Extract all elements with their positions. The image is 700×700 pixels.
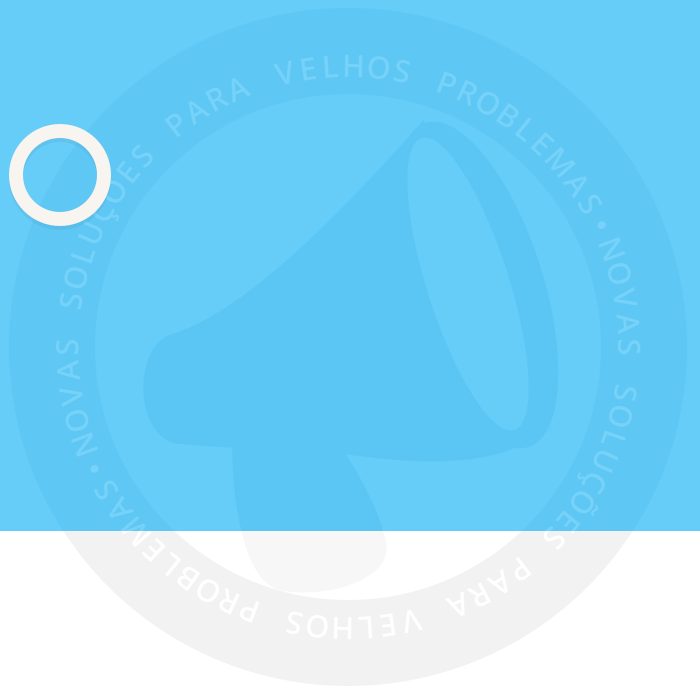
staticText: A xyxy=(568,163,588,204)
staticText: U xyxy=(79,212,102,253)
staticText: V xyxy=(275,52,294,93)
staticText: R xyxy=(219,582,238,623)
staticText: P xyxy=(438,63,457,103)
staticText: B xyxy=(177,558,197,599)
staticText xyxy=(625,350,633,391)
staticText: E xyxy=(534,123,551,163)
staticText: Õ xyxy=(101,171,125,211)
staticText: O xyxy=(64,400,88,441)
staticText: A xyxy=(619,303,639,343)
staticText: L xyxy=(73,234,89,275)
staticText: S xyxy=(394,50,411,91)
staticText: O xyxy=(64,400,88,441)
staticText: R xyxy=(206,78,225,118)
staticText: S xyxy=(394,50,411,91)
staticText: L xyxy=(358,608,374,649)
staticText: H xyxy=(331,609,354,649)
staticText: A xyxy=(57,350,77,391)
staticText: A xyxy=(227,67,247,108)
staticText: E xyxy=(299,47,316,88)
staticText: A xyxy=(491,564,511,604)
staticText: R xyxy=(458,71,477,112)
staticText: A xyxy=(108,490,128,531)
staticText: A xyxy=(619,303,639,343)
staticText: O xyxy=(476,82,500,123)
staticText: A xyxy=(108,490,128,531)
staticText: S xyxy=(133,135,150,175)
staticText: P xyxy=(511,550,530,591)
staticText: O xyxy=(609,396,633,437)
staticText: O xyxy=(367,46,391,87)
staticText: A xyxy=(185,90,205,130)
staticText: Õ xyxy=(101,171,125,211)
staticText: O xyxy=(305,607,329,648)
staticText: S xyxy=(285,603,302,644)
staticText: L xyxy=(162,545,178,586)
staticText: V xyxy=(402,601,421,642)
staticText: Ç xyxy=(586,462,605,503)
staticText: S xyxy=(546,518,563,559)
staticText: Ç xyxy=(91,191,110,232)
staticText: B xyxy=(498,95,518,135)
staticText: Õ xyxy=(571,483,595,523)
staticText: • xyxy=(596,205,608,245)
staticText: S xyxy=(546,518,563,559)
staticText: P xyxy=(239,591,258,631)
staticText: A xyxy=(185,90,205,130)
staticText: H xyxy=(342,45,365,85)
staticText: E xyxy=(118,151,135,192)
staticText: P xyxy=(166,103,185,144)
staticText: R xyxy=(471,576,490,616)
staticText: A xyxy=(491,564,511,604)
staticText: Õ xyxy=(571,483,595,523)
staticText: E xyxy=(380,606,397,646)
staticText: V xyxy=(402,601,421,642)
staticText: O xyxy=(305,607,329,648)
staticText: L xyxy=(322,45,338,86)
staticText: S xyxy=(621,326,638,367)
staticText: O xyxy=(608,253,632,294)
staticText: U xyxy=(79,212,102,253)
staticText: O xyxy=(609,396,633,437)
staticText: O xyxy=(476,82,500,123)
staticText: A xyxy=(57,350,77,391)
staticText: P xyxy=(438,63,457,103)
staticText: B xyxy=(498,95,518,135)
staticText: O xyxy=(63,257,87,298)
staticText: M xyxy=(547,141,575,182)
staticText: N xyxy=(600,229,624,269)
staticText: S xyxy=(582,183,599,224)
staticText: M xyxy=(547,141,575,182)
staticText: V xyxy=(61,376,80,416)
staticText: E xyxy=(380,606,397,646)
staticText: S xyxy=(582,183,599,224)
staticText: S xyxy=(97,470,114,511)
staticText: M xyxy=(121,512,149,552)
staticText: Ç xyxy=(91,191,110,232)
staticText: N xyxy=(71,424,95,465)
staticText xyxy=(63,303,71,344)
staticText: E xyxy=(118,151,135,192)
staticText: V xyxy=(61,376,80,416)
staticText: O xyxy=(196,571,220,612)
staticText: L xyxy=(606,419,622,460)
staticText: V xyxy=(616,278,635,318)
staticText: P xyxy=(511,550,530,591)
staticText: O xyxy=(608,253,632,294)
staticText: L xyxy=(518,108,534,149)
staticText: • xyxy=(88,449,100,489)
staticText: S xyxy=(57,327,74,367)
staticText: M xyxy=(121,512,149,552)
staticText: V xyxy=(616,278,635,318)
staticText: S xyxy=(285,603,302,644)
staticText: B xyxy=(177,558,197,599)
staticText: S xyxy=(618,373,635,414)
